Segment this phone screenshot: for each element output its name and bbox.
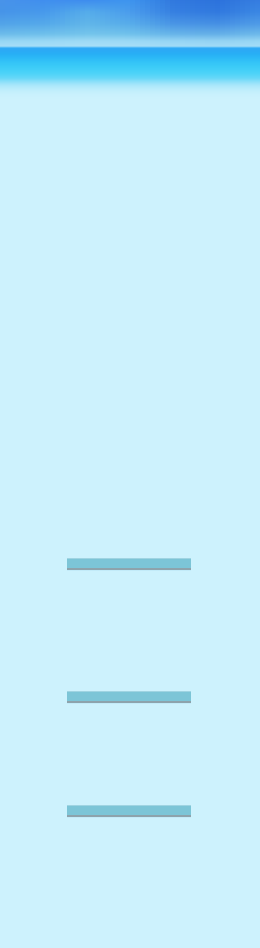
button[interactable]: Field one xyxy=(67,558,191,571)
button[interactable]: Field three xyxy=(67,805,191,818)
button[interactable]: Field two xyxy=(67,691,191,704)
